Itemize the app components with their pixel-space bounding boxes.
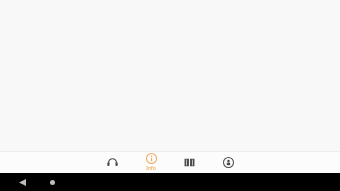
staticText: Info xyxy=(146,165,156,172)
button[interactable]: Home xyxy=(42,173,62,191)
button[interactable]: Back xyxy=(12,173,32,191)
button[interactable]: Book xyxy=(172,152,206,173)
button[interactable]: Audio xyxy=(95,152,129,173)
button[interactable]: Account xyxy=(211,152,245,173)
button[interactable]: Info xyxy=(134,152,168,173)
